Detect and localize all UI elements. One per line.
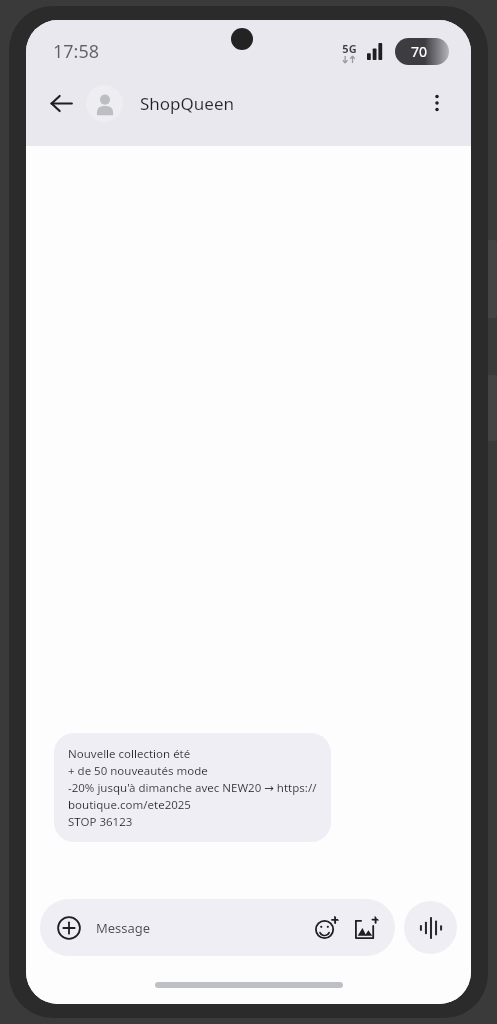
staticText: 17:58 [53, 39, 100, 64]
button[interactable]: Nouvelle collection été + de 50 nouveaut… [54, 733, 331, 842]
button[interactable]: Insert emoji [311, 913, 341, 943]
button[interactable]: ShopQueen [140, 92, 417, 115]
button[interactable]: Attach image [351, 913, 381, 943]
staticText: Nouvelle collection été + de 50 nouveaut… [68, 746, 317, 829]
button[interactable]: Record audio message [404, 901, 457, 954]
staticText: 5G [342, 41, 357, 56]
button[interactable]: Contact avatar [86, 85, 123, 122]
button[interactable]: Add attachment [40, 899, 395, 956]
button[interactable]: Add attachment [56, 915, 82, 941]
staticText: 70 [411, 42, 428, 61]
button[interactable]: Back [40, 82, 82, 124]
button[interactable]: More options [417, 83, 457, 123]
staticText: Message [96, 919, 311, 937]
